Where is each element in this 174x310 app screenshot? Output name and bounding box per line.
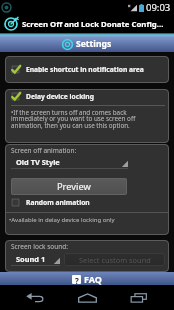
- staticText: •Available in delay device locking only: [9, 216, 115, 224]
- button[interactable]: Screen lock sound:: [5, 240, 169, 272]
- button[interactable]: Recents: [122, 285, 156, 310]
- staticText: ?: [75, 275, 79, 284]
- staticText: Settings: [76, 38, 112, 50]
- button[interactable]: Old TV Style: [11, 156, 128, 169]
- button[interactable]: Select custom sound: [64, 253, 165, 266]
- staticText: FAQ: [84, 273, 102, 285]
- staticText: 09:03: [146, 1, 171, 14]
- button[interactable]: Settings: [0, 33, 174, 52]
- staticText: •If the screen turns off and comes back …: [11, 108, 136, 130]
- staticText: Old TV Style: [16, 157, 60, 167]
- button[interactable]: Home: [70, 285, 104, 310]
- staticText: Sound 1: [16, 254, 46, 264]
- button[interactable]: ?: [0, 272, 174, 285]
- staticText: Screen Off and Lock Donate Config…: [22, 19, 164, 30]
- button[interactable]: Delay device locking: [5, 89, 169, 143]
- staticText: Screen off animation:: [11, 146, 77, 155]
- staticText: Delay device locking: [26, 92, 94, 101]
- staticText: Enable shortcut in notification area: [26, 65, 144, 74]
- staticText: Preview: [57, 180, 91, 193]
- button[interactable]: Screen off animation:: [5, 144, 169, 235]
- button[interactable]: Back: [18, 285, 52, 310]
- staticText: Screen lock sound:: [11, 242, 68, 251]
- staticText: Random animation: [26, 198, 90, 207]
- staticText: Select custom sound: [79, 255, 151, 265]
- button[interactable]: Sound 1: [11, 253, 60, 266]
- button[interactable]: Enable shortcut in notification area: [5, 56, 169, 83]
- button[interactable]: Preview: [11, 178, 127, 195]
